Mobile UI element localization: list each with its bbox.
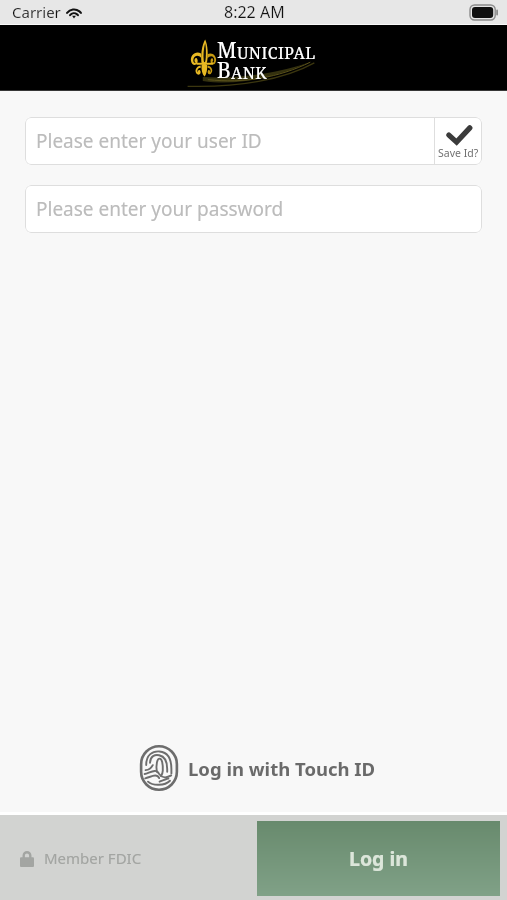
button[interactable]: Password input field <box>25 185 482 233</box>
staticText: Please enter your user ID <box>36 128 262 154</box>
button[interactable]: Log in <box>257 821 500 896</box>
button[interactable]: Save Id <box>435 117 482 165</box>
staticText: Please enter your password <box>36 196 284 222</box>
button[interactable]: User ID input field <box>25 117 434 165</box>
staticText: Log in with Touch ID <box>188 756 376 781</box>
staticText: B <box>217 56 231 85</box>
staticText: ANK <box>231 62 267 84</box>
staticText: Carrier <box>12 2 61 22</box>
button[interactable]: Log in with Touch ID <box>139 744 376 792</box>
staticText: M <box>217 36 237 65</box>
button[interactable]: Member FDIC <box>20 848 142 868</box>
staticText: UNICIPAL <box>237 42 316 64</box>
staticText: Member FDIC <box>44 848 142 868</box>
staticText: 8:22 AM <box>224 1 285 23</box>
staticText: Save Id? <box>438 146 479 160</box>
staticText: Log in <box>349 845 408 872</box>
